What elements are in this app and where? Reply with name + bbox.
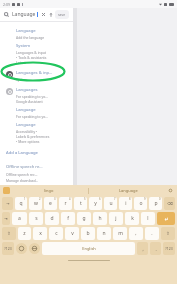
button[interactable]: Clear	[40, 11, 47, 18]
staticText: n	[102, 230, 106, 237]
staticText: Language	[16, 107, 36, 113]
button[interactable]: g	[77, 212, 91, 225]
staticText: Languages	[16, 87, 38, 93]
staticText: 3	[54, 197, 56, 201]
staticText: i	[125, 200, 127, 207]
button[interactable]: n	[97, 227, 111, 240]
button[interactable]: a	[12, 212, 27, 225]
staticText: 0	[159, 197, 161, 201]
button[interactable]: Language switch	[29, 243, 40, 254]
button[interactable]: b	[81, 227, 95, 240]
staticText: l	[147, 215, 149, 222]
button[interactable]: System	[6, 43, 69, 65]
button[interactable]: i	[119, 197, 132, 210]
button[interactable]: ,	[137, 242, 148, 255]
staticText: m	[118, 230, 123, 237]
staticText: Language	[119, 188, 138, 193]
staticText: Add the language	[16, 35, 45, 40]
button[interactable]: m	[113, 227, 127, 240]
button[interactable]: Shift	[2, 227, 16, 240]
staticText: Language	[16, 28, 36, 34]
button[interactable]: Keyboard settings	[3, 187, 10, 194]
staticText: Accessibility •	[16, 129, 38, 134]
staticText: 4	[69, 197, 71, 201]
staticText: Google Assistant	[16, 99, 43, 104]
button[interactable]: .	[145, 227, 159, 240]
button[interactable]: Shift right	[161, 227, 175, 240]
staticText: y	[94, 200, 97, 207]
staticText: ,	[142, 246, 144, 252]
button[interactable]: r	[59, 197, 72, 210]
staticText: f	[67, 215, 69, 222]
staticText: v	[71, 230, 74, 237]
button[interactable]: u	[104, 197, 117, 210]
button[interactable]: z	[18, 227, 31, 240]
staticText: 5	[84, 197, 86, 201]
button[interactable]: Language	[89, 185, 167, 196]
staticText: h	[98, 215, 102, 222]
button[interactable]: Tab	[2, 197, 13, 210]
staticText: 9	[144, 197, 146, 201]
button[interactable]: j	[109, 212, 123, 225]
staticText: ⇧	[7, 231, 11, 236]
staticText: r	[64, 200, 67, 207]
staticText: 1	[24, 197, 26, 201]
staticText: System	[16, 43, 31, 49]
button[interactable]: Symbols right	[163, 242, 175, 255]
button[interactable]: Add a Language	[6, 150, 38, 156]
button[interactable]: t	[74, 197, 87, 210]
staticText: .	[155, 246, 157, 252]
button[interactable]: Symbols	[2, 242, 14, 255]
button[interactable]: h	[93, 212, 107, 225]
button[interactable]: e	[44, 197, 57, 210]
staticText: ⇧	[166, 231, 170, 236]
staticText: 2:09	[3, 2, 10, 7]
button[interactable]: English	[42, 242, 135, 255]
button[interactable]: v	[65, 227, 79, 240]
button[interactable]: q	[15, 197, 27, 210]
staticText: save	[58, 12, 66, 17]
staticText: q	[19, 200, 23, 207]
staticText: z	[23, 230, 26, 237]
button[interactable]: Backspace	[164, 197, 175, 210]
button[interactable]: Language	[6, 28, 69, 40]
button[interactable]: p	[149, 197, 162, 210]
button[interactable]: l	[141, 212, 155, 225]
button[interactable]: Emoji	[16, 243, 27, 254]
button[interactable]: lingo	[10, 185, 88, 196]
staticText: o	[139, 200, 143, 207]
button[interactable]: Language	[6, 122, 69, 144]
button[interactable]: k	[125, 212, 139, 225]
button[interactable]: save	[55, 10, 69, 19]
button[interactable]: d	[45, 212, 59, 225]
staticText: • Tools & assistants	[16, 55, 47, 60]
button[interactable]: x	[33, 227, 47, 240]
button[interactable]: More suggestions	[167, 187, 174, 194]
button[interactable]: Enter	[157, 212, 175, 225]
staticText: c	[55, 230, 58, 237]
button[interactable]: s	[29, 212, 43, 225]
staticText: b	[86, 230, 90, 237]
button[interactable]: Language	[12, 11, 40, 18]
button[interactable]: c	[49, 227, 63, 240]
staticText: System	[16, 77, 28, 82]
button[interactable]: Voice search	[47, 11, 54, 18]
staticText: Offline speech re…	[6, 164, 43, 170]
staticText: 7	[114, 197, 116, 201]
staticText: English	[82, 246, 96, 251]
staticText: t	[80, 200, 82, 207]
button[interactable]: Caps	[2, 212, 10, 225]
button[interactable]: Languages	[6, 87, 69, 104]
button[interactable]: w	[29, 197, 42, 210]
button[interactable]: Language	[6, 107, 69, 119]
button[interactable]: y	[89, 197, 102, 210]
button[interactable]: o	[134, 197, 147, 210]
button[interactable]: ,	[129, 227, 143, 240]
button[interactable]: f	[61, 212, 75, 225]
button[interactable]: Languages & inp…	[6, 70, 69, 82]
staticText: Language	[16, 122, 36, 128]
staticText: ,	[135, 230, 137, 237]
staticText: ⌫	[167, 201, 173, 206]
staticText: ↵	[164, 216, 169, 222]
